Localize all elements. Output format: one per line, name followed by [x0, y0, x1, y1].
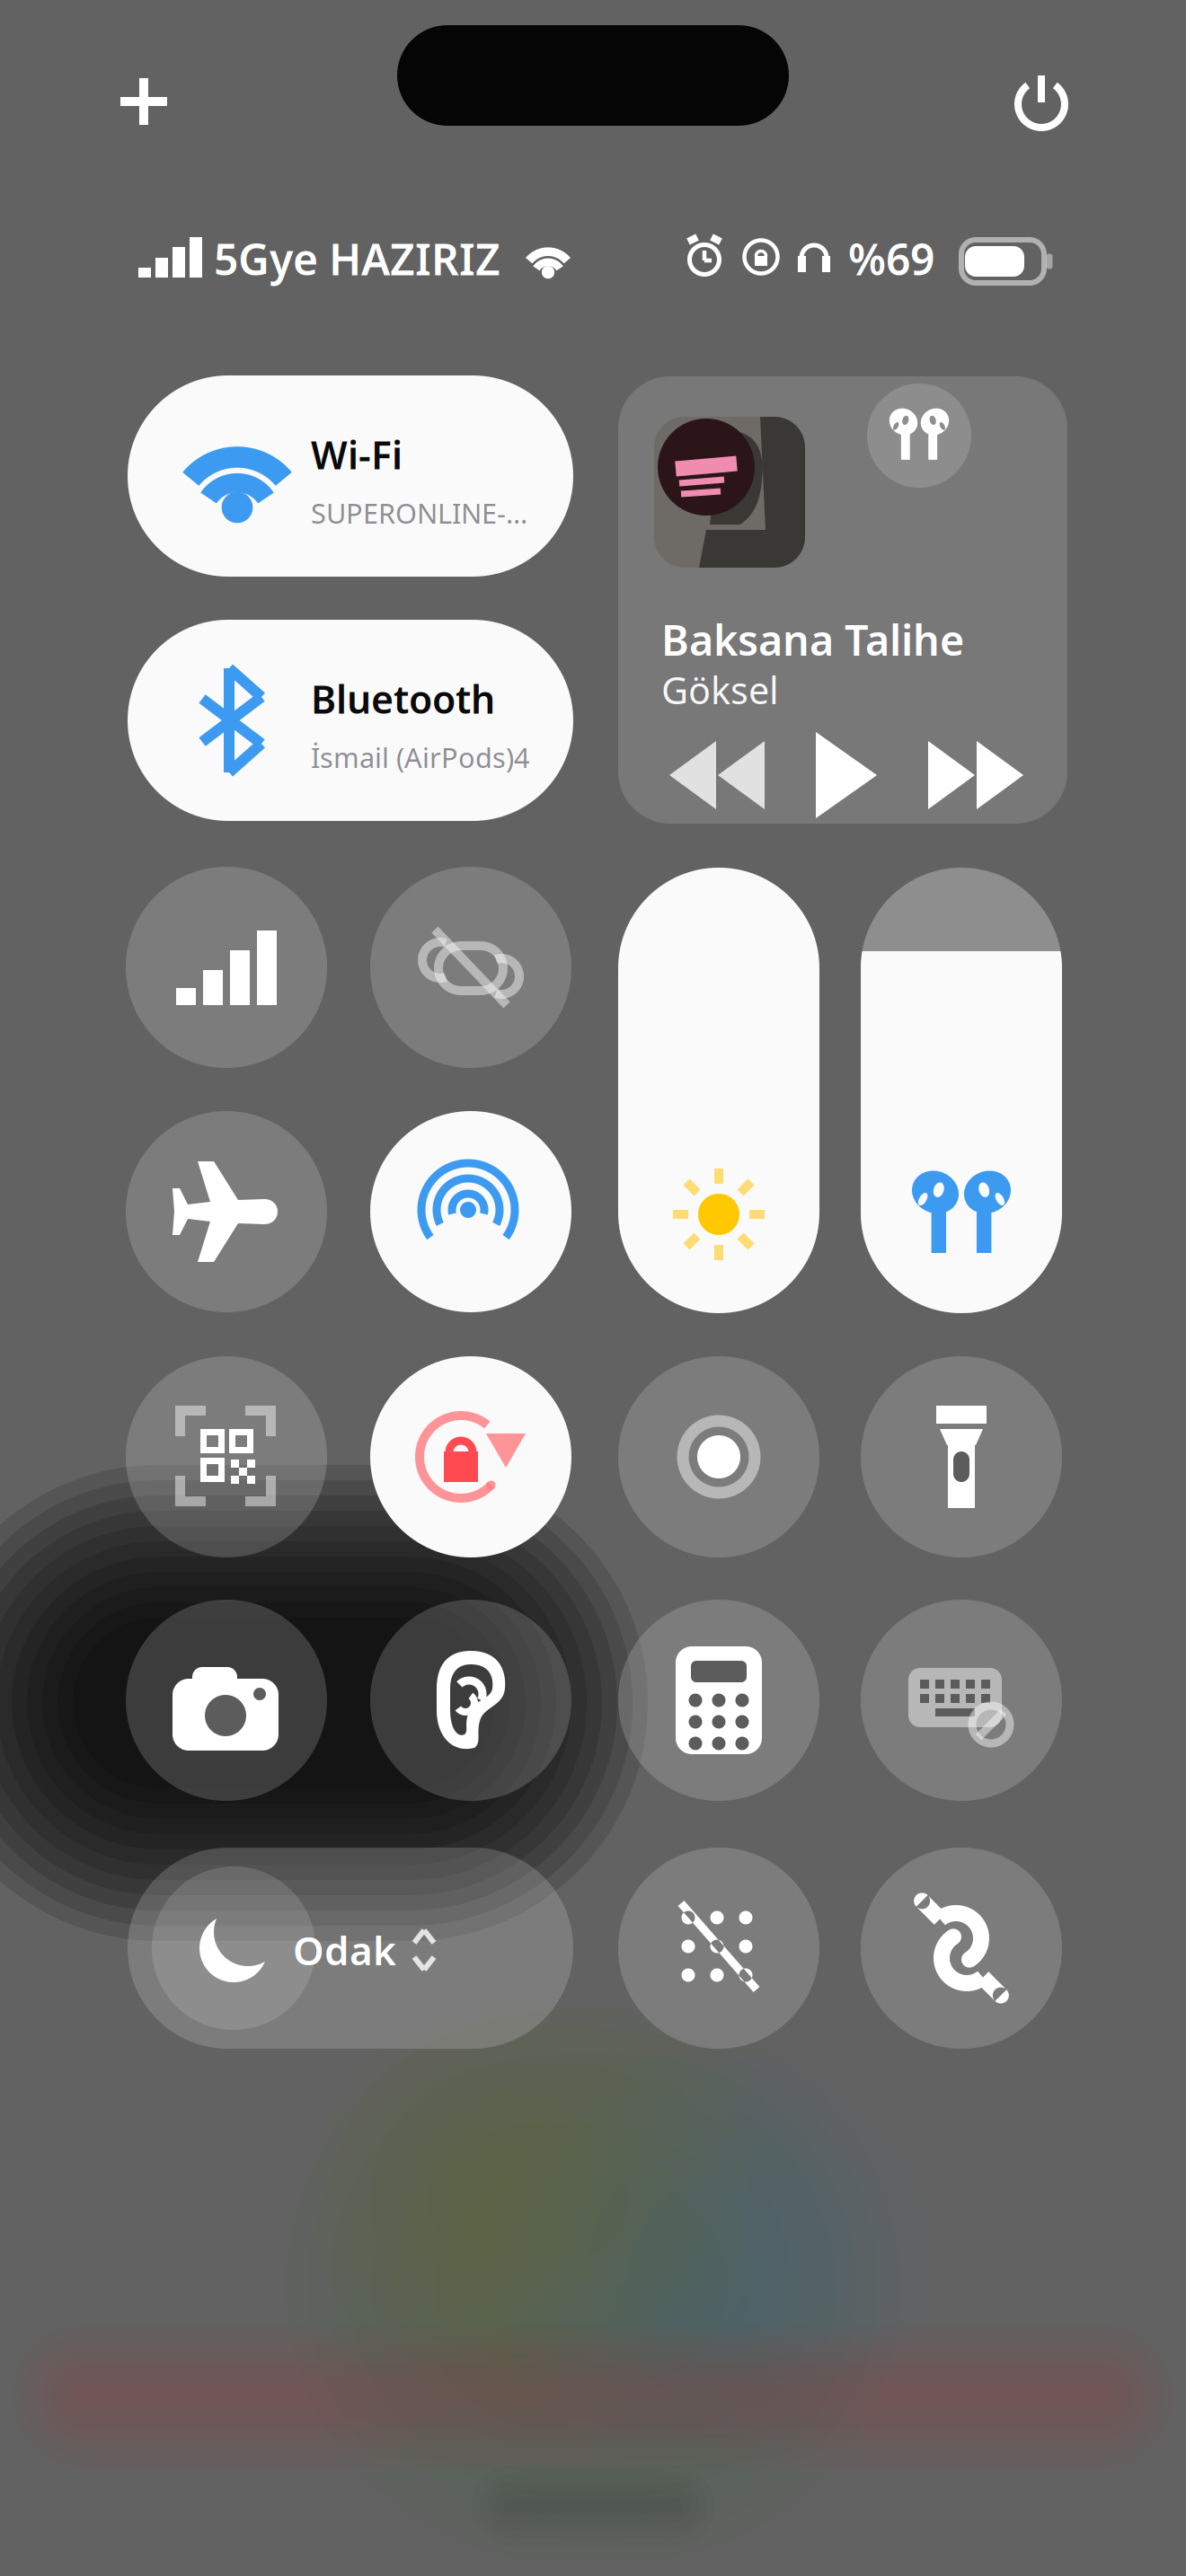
button[interactable]: Wi-Fi [128, 375, 573, 577]
button[interactable]: Code Scanner [126, 1356, 327, 1557]
button[interactable]: Keyboard [861, 1600, 1062, 1801]
button[interactable]: Calculator [618, 1600, 819, 1801]
button[interactable]: Previous track [664, 734, 770, 816]
button[interactable]: Play [803, 728, 886, 822]
button[interactable]: Odak [128, 1848, 573, 2049]
staticText: Wi-Fi [311, 429, 403, 480]
button[interactable]: Next track [923, 734, 1029, 816]
button[interactable]: Volume [861, 868, 1062, 1313]
button[interactable]: Hearing [370, 1600, 571, 1801]
staticText: Baksana Talihe [661, 612, 964, 667]
button[interactable]: Braille [618, 1848, 819, 2049]
button[interactable]: Power off [983, 43, 1100, 160]
button[interactable]: Rotation Lock [370, 1356, 571, 1557]
button[interactable]: Camera [126, 1600, 327, 1801]
button[interactable]: Brightness [618, 868, 819, 1313]
staticText: Göksel [661, 665, 779, 715]
staticText: SUPERONLINE-… [311, 495, 527, 531]
button[interactable]: AirPlay output [867, 384, 971, 488]
button[interactable]: Airplane Mode [126, 1111, 327, 1312]
button[interactable]: Bluetooth [128, 620, 573, 821]
button[interactable]: Flashlight [861, 1356, 1062, 1557]
button[interactable]: AirDrop [370, 1111, 571, 1312]
staticText: Bluetooth [311, 673, 495, 724]
staticText: 5Gye HAZIRIZ [214, 230, 500, 287]
staticText: Odak [293, 1924, 396, 1976]
button[interactable]: Music Recognition [861, 1848, 1062, 2049]
staticText: %69 [848, 230, 934, 287]
button[interactable]: SharePlay [370, 867, 571, 1068]
button[interactable]: Screen Recording [618, 1356, 819, 1557]
button[interactable]: Add a control [85, 43, 202, 160]
button[interactable]: Cellular Data [126, 867, 327, 1068]
staticText: İsmail (AirPods)4 [311, 739, 530, 775]
